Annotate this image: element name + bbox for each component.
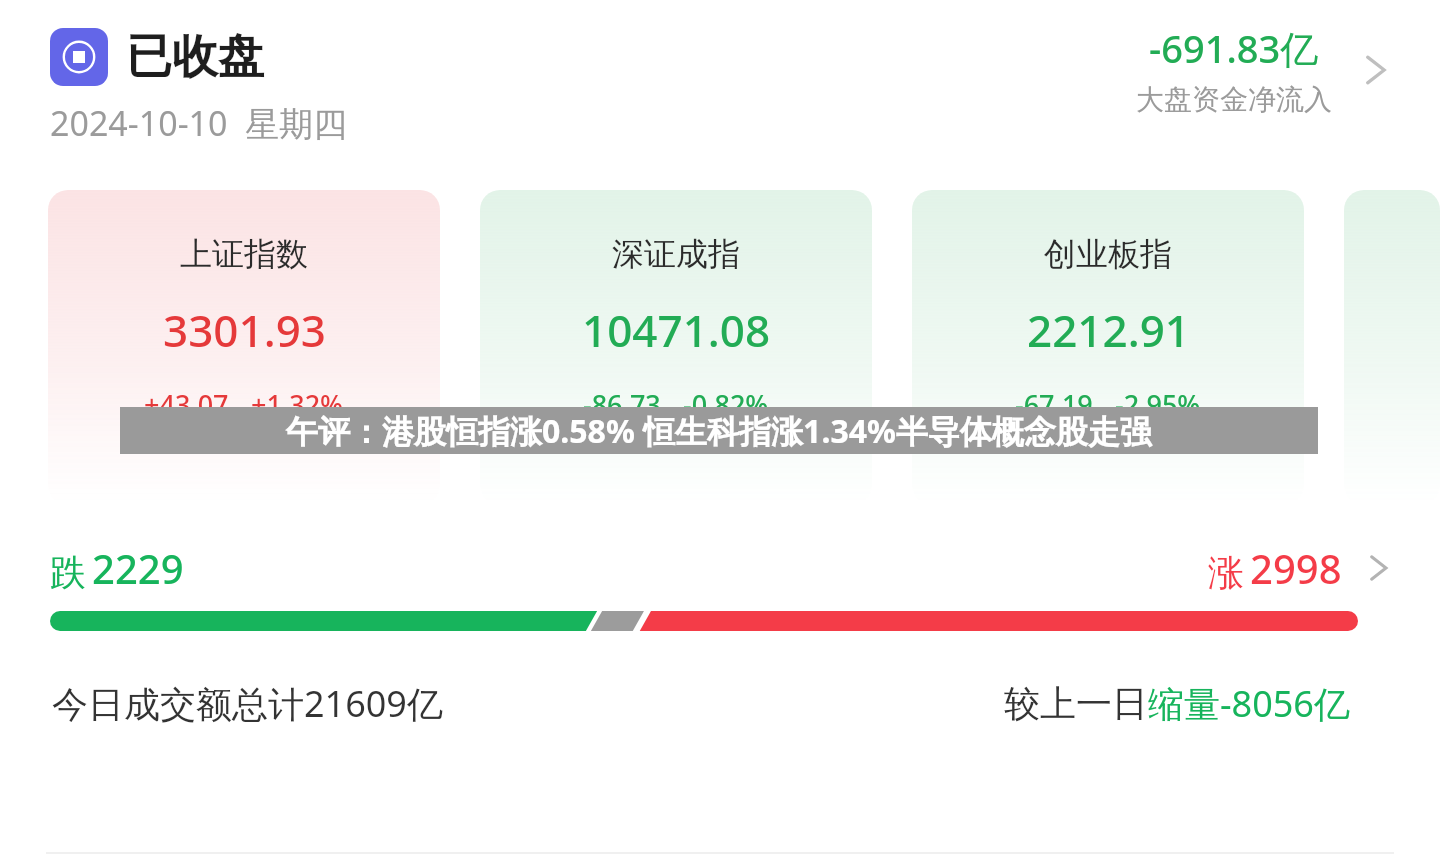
staticText: 大盘资金净流入 [1136,82,1332,117]
staticText: 2998 [1250,541,1342,595]
staticText: 已收盘 [126,28,264,86]
button[interactable]: 创业板指 [912,190,1304,505]
button[interactable]: 跌 [50,541,1398,595]
staticText: 2024-10-10 星期四 [50,100,348,146]
staticText: -2.95% [1115,386,1201,423]
button[interactable] [1344,190,1440,505]
staticText: 创业板指 [1044,234,1172,274]
staticText: 午评：港股恒指涨0.58% 恒生科指涨1.34%半导体概念股走强 [286,409,1152,453]
staticText: 缩量-8056亿 [1148,679,1350,728]
staticText: 上证指数 [180,234,308,274]
button[interactable]: 深证成指 [480,190,872,505]
staticText: 10471.08 [582,300,771,360]
staticText: 2212.91 [1027,300,1190,360]
staticText: 今日成交额总计21609亿 [52,679,443,728]
button[interactable]: -691.83亿 [1136,22,1398,117]
staticText: 深证成指 [612,234,740,274]
staticText: -0.82% [683,386,769,423]
button[interactable]: 上证指数 [48,190,440,505]
staticText: +1.32% [251,386,344,423]
staticText: 涨 [1208,550,1244,595]
staticText: -67.19 [1015,386,1093,423]
staticText: -691.83亿 [1149,22,1319,74]
staticText: 3301.93 [163,300,326,360]
staticText: 跌 [50,550,86,595]
staticText: -86.73 [583,386,661,423]
staticText: 较上一日 [1004,681,1148,726]
staticText: 2229 [92,541,184,595]
staticText: +43.07 [144,386,229,423]
